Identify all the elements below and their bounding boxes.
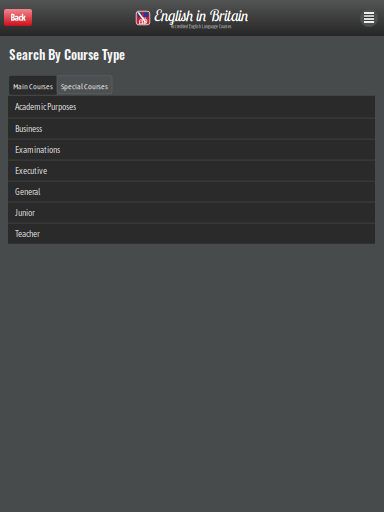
staticText: Accredited English Language Courses xyxy=(171,24,232,29)
staticText: Business xyxy=(15,124,42,134)
staticText: Back xyxy=(10,12,25,23)
button[interactable]: Academic Purposes xyxy=(8,96,375,118)
staticText: Special Courses xyxy=(61,82,108,91)
staticText: General xyxy=(15,187,40,197)
staticText: Main Courses xyxy=(13,82,53,91)
button[interactable]: Special Courses xyxy=(57,76,112,95)
button[interactable]: Junior xyxy=(8,202,375,223)
staticText: Junior xyxy=(15,208,35,218)
button[interactable]: Executive xyxy=(8,160,375,181)
button[interactable]: Business xyxy=(8,118,375,139)
staticText: Examinations xyxy=(15,145,60,155)
button[interactable]: Main Courses xyxy=(9,76,57,95)
staticText: Executive xyxy=(15,166,47,176)
button[interactable]: Back xyxy=(4,9,32,26)
staticText: Teacher xyxy=(15,229,40,239)
button[interactable]: Examinations xyxy=(8,139,375,160)
staticText: English in Britain xyxy=(154,6,248,25)
staticText: eib xyxy=(139,16,148,26)
button[interactable]: Teacher xyxy=(8,223,375,244)
staticText: Search By Course Type xyxy=(9,45,125,64)
staticText: Academic Purposes xyxy=(15,102,76,112)
button[interactable]: Menu xyxy=(359,8,379,28)
button[interactable]: General xyxy=(8,181,375,202)
